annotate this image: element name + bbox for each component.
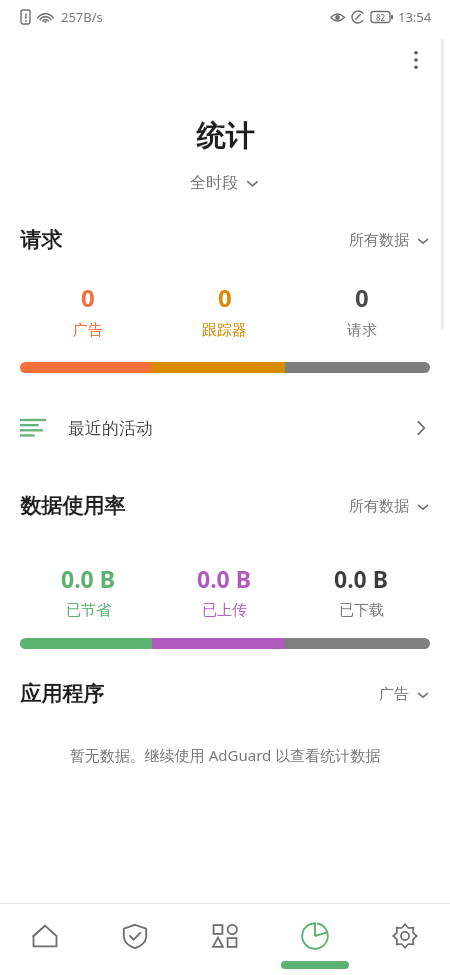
button[interactable]: 所有数据 (349, 231, 430, 250)
staticText: 统计 (0, 118, 450, 155)
staticText: 最近的活动 (68, 418, 153, 439)
button[interactable]: 0.0 B (156, 563, 293, 620)
staticText: 暂无数据。继续使用 AdGuard 以查看统计数据 (20, 745, 430, 765)
staticText: 请求 (347, 321, 377, 340)
button[interactable]: 0.0 B (293, 563, 430, 620)
staticText: 0 (218, 281, 232, 314)
staticText: 请求 (20, 227, 62, 253)
button[interactable]: 0 (293, 281, 430, 340)
button[interactable]: 广告 (379, 685, 430, 704)
staticText: 已节省 (66, 601, 111, 620)
staticText: 所有数据 (349, 231, 409, 250)
staticText: 已下载 (339, 601, 384, 620)
button[interactable]: Settings (360, 904, 450, 975)
staticText: 应用程序 (20, 681, 104, 707)
staticText: 广告 (379, 685, 409, 704)
staticText: 0 (81, 281, 95, 314)
button[interactable]: Protection (90, 904, 180, 975)
button[interactable]: 0 (20, 281, 156, 340)
staticText: 13:54 (398, 8, 432, 26)
button[interactable]: 0 (156, 281, 293, 340)
button[interactable]: 全时段 (0, 173, 450, 193)
staticText: 跟踪器 (202, 321, 247, 340)
staticText: 0.0 B (61, 563, 116, 594)
staticText: 0 (355, 281, 369, 314)
staticText: 0.0 B (334, 563, 389, 594)
staticText: 广告 (73, 321, 103, 340)
button[interactable]: Home (0, 904, 90, 975)
button[interactable]: More options (394, 38, 438, 82)
staticText: 82 (376, 12, 386, 23)
staticText: 257B/s (61, 8, 103, 26)
button[interactable]: 0.0 B (20, 563, 156, 620)
button[interactable]: Statistics (270, 904, 360, 975)
staticText: 已上传 (202, 601, 247, 620)
staticText: 全时段 (190, 173, 238, 193)
button[interactable]: 所有数据 (349, 497, 430, 516)
staticText: 所有数据 (349, 497, 409, 516)
button[interactable]: Apps (180, 904, 270, 975)
staticText: 数据使用率 (20, 493, 125, 519)
button[interactable]: 最近的活动 (0, 401, 450, 455)
staticText: 0.0 B (197, 563, 252, 594)
